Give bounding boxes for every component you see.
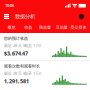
staticText: 10:06 [5, 3, 14, 8]
staticText: 概览 [7, 25, 15, 30]
staticText: 收益 [24, 25, 32, 30]
staticText: 1,291,581 [4, 78, 29, 85]
staticText: 互动量 [56, 25, 68, 30]
button[interactable]: 互动量 [53, 22, 70, 33]
staticText: 您的预计收益 [4, 36, 28, 41]
staticText: 数据分析 [15, 13, 35, 20]
staticText: 最近 28 天 (截至 1 日) [4, 43, 41, 48]
staticText: 最近 28 天 (截至 1 日) [4, 71, 41, 76]
staticText: 受众群体 [71, 25, 87, 30]
button[interactable]: 概览 [3, 22, 20, 33]
staticText: 观看次数和观看时长 [4, 64, 40, 69]
button[interactable]: Profile [76, 11, 87, 22]
button[interactable]: Menu [0, 11, 13, 22]
button[interactable]: 播放量 [37, 22, 53, 33]
staticText: 播放量 [39, 25, 51, 30]
button[interactable]: 受众群体 [70, 22, 87, 33]
button[interactable]: 收益 [20, 22, 37, 33]
staticText: $3,674.47 [4, 50, 28, 57]
